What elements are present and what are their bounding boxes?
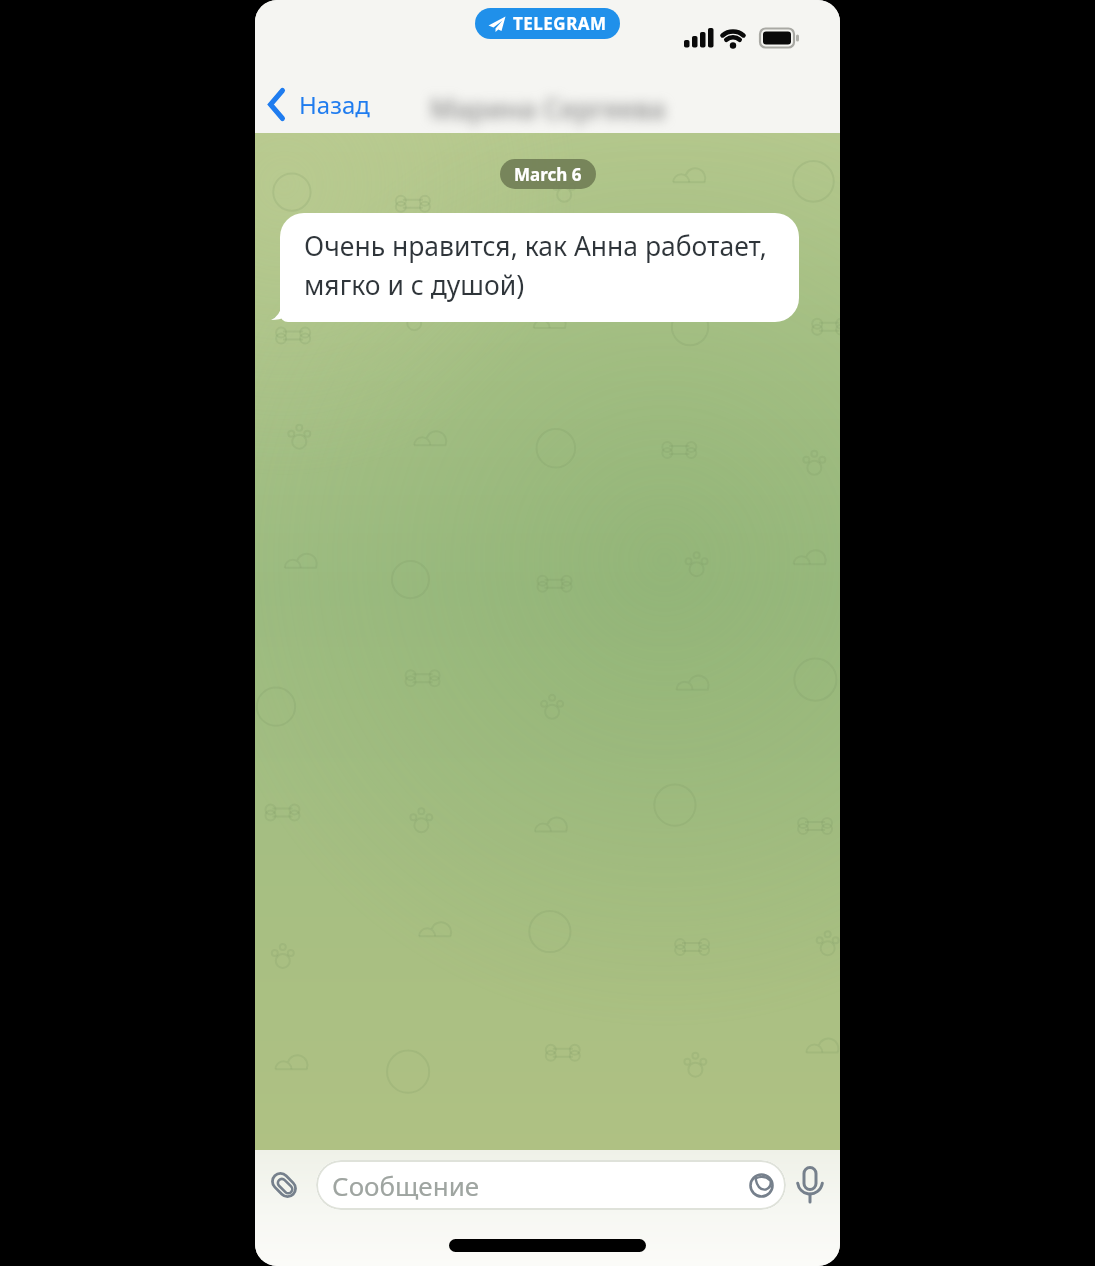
staticText: TELEGRAM	[513, 12, 607, 35]
staticText: Марина Сергеева	[430, 90, 666, 127]
staticText: March 6	[514, 163, 582, 186]
staticText: Очень нравится, как Анна работает, мягко…	[304, 228, 767, 303]
button[interactable]: TELEGRAM	[475, 8, 620, 39]
staticText: Назад	[299, 88, 370, 121]
button[interactable]: Очень нравится, как Анна работает, мягко…	[280, 213, 799, 322]
button[interactable]: Сообщение	[316, 1160, 786, 1210]
button[interactable]: Назад	[267, 88, 370, 121]
staticText: Сообщение	[332, 1168, 480, 1203]
button[interactable]	[796, 1166, 824, 1216]
button[interactable]: March 6	[500, 159, 596, 189]
button[interactable]	[269, 1169, 299, 1201]
